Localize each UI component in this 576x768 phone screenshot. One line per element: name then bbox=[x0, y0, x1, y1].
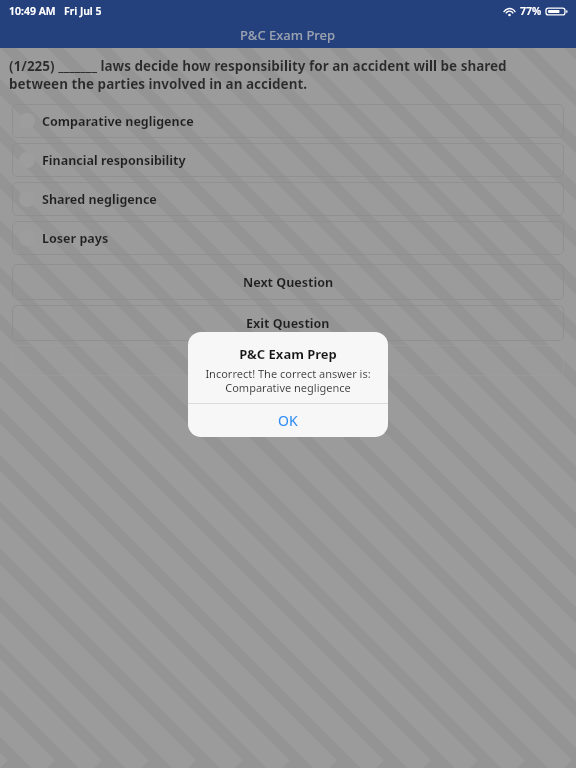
staticText: Loser pays bbox=[42, 230, 109, 247]
button[interactable]: OK bbox=[188, 404, 388, 437]
staticText: 10:49 AM bbox=[9, 4, 56, 18]
staticText: 77% bbox=[520, 4, 542, 18]
staticText: P&C Exam Prep bbox=[239, 345, 337, 363]
staticText: Exit Question bbox=[246, 315, 330, 332]
staticText: (1/225) _______ laws decide how responsi… bbox=[9, 57, 562, 93]
staticText: Financial responsibility bbox=[42, 152, 186, 169]
button[interactable]: Loser pays bbox=[12, 221, 564, 255]
staticText: Incorrect! The correct answer is: Compar… bbox=[198, 366, 378, 395]
staticText: Shared negligence bbox=[42, 191, 157, 208]
button[interactable]: Exit Question bbox=[12, 305, 564, 341]
staticText: Comparative negligence bbox=[42, 113, 194, 130]
button[interactable]: Comparative negligence bbox=[12, 104, 564, 138]
button[interactable]: Shared negligence bbox=[12, 182, 564, 216]
staticText: P&C Exam Prep bbox=[240, 26, 336, 44]
button[interactable]: Next Question bbox=[12, 264, 564, 300]
staticText: OK bbox=[278, 411, 298, 430]
staticText: Fri Jul 5 bbox=[64, 4, 102, 18]
button[interactable] bbox=[12, 345, 564, 376]
staticText: Next Question bbox=[243, 274, 334, 291]
button[interactable]: Financial responsibility bbox=[12, 143, 564, 177]
